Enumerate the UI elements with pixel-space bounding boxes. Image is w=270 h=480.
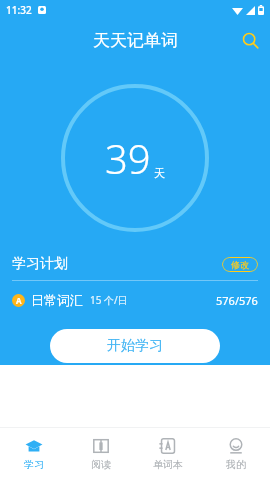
staticText: 学习计划 — [12, 255, 68, 273]
staticText: 11:32 — [6, 3, 32, 17]
staticText: 单词本 — [153, 458, 183, 471]
staticText: 日常词汇 — [31, 292, 83, 308]
staticText: 阅读 — [91, 458, 111, 471]
button[interactable]: 学习 — [0, 428, 67, 480]
staticText: 39 — [105, 131, 151, 185]
staticText: 开始学习 — [107, 337, 163, 355]
staticText: 学习 — [24, 458, 44, 471]
button[interactable]: 阅读 — [67, 428, 134, 480]
staticText: A — [16, 295, 22, 306]
staticText: 天天记单词 — [93, 30, 178, 51]
button[interactable]: 修改 — [222, 257, 258, 272]
button[interactable]: A — [0, 289, 270, 311]
button[interactable]: 我的 — [202, 428, 270, 480]
button[interactable]: 单词本 — [134, 428, 202, 480]
staticText: 我的 — [226, 458, 246, 471]
staticText: 576/576 — [216, 293, 258, 308]
button[interactable]: Search — [230, 20, 270, 60]
staticText: 15 个/日 — [90, 293, 128, 307]
staticText: 修改 — [231, 259, 249, 270]
button[interactable]: 开始学习 — [50, 329, 220, 363]
staticText: 天 — [154, 166, 165, 180]
